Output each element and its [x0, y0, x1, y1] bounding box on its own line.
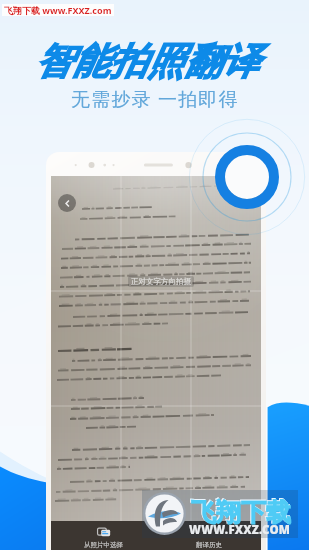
staticText: 智能拍照翻译 — [35, 38, 259, 85]
staticText: 飞翔下载 — [190, 496, 290, 527]
button[interactable]: 从照片中选择 — [51, 521, 156, 550]
staticText: 翻译历史 — [196, 541, 222, 549]
staticText: 飞翔下载 — [191, 497, 291, 528]
staticText: 从照片中选择 — [84, 541, 123, 549]
button[interactable]: Back — [58, 194, 76, 212]
staticText: WWW.FXXZ.COM — [189, 522, 291, 538]
staticText: 正对文字方向拍摄 — [131, 277, 191, 286]
staticText: 飞翔下载 www.FXXZ.com — [4, 4, 112, 16]
button[interactable]: 翻译历史 — [156, 521, 261, 550]
button[interactable]: Capture — [187, 117, 307, 237]
staticText: 无需抄录 一拍即得 — [71, 86, 239, 112]
